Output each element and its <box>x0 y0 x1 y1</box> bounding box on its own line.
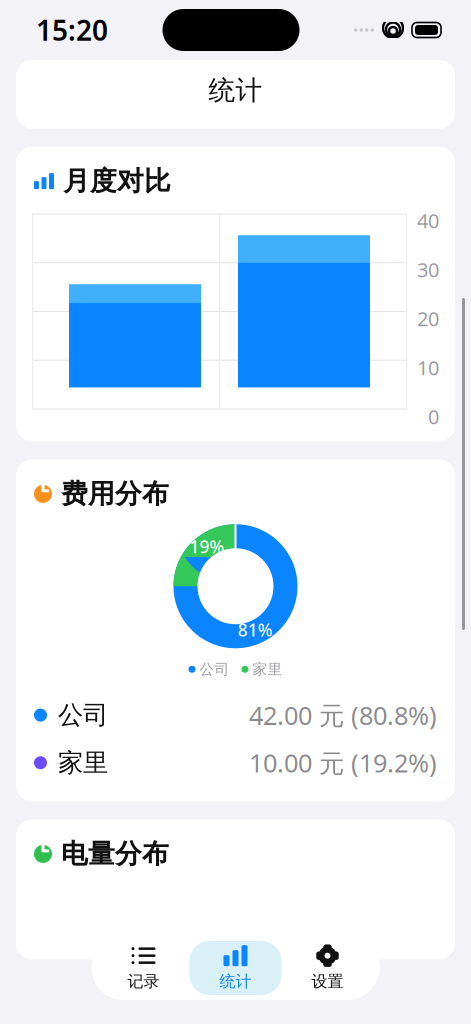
staticText: 10.00 元 (19.2%) <box>249 746 437 779</box>
staticText: 42.00 元 (80.8%) <box>249 698 437 732</box>
staticText: 10 <box>417 354 439 381</box>
staticText: 月度对比 <box>63 165 171 198</box>
staticText: 统计 <box>219 972 251 991</box>
staticText: 电量分布 <box>61 838 169 870</box>
staticText: 设置 <box>311 972 343 991</box>
button[interactable]: 家里 <box>34 742 437 783</box>
staticText: 40 <box>417 207 439 234</box>
button[interactable]: 设置 <box>281 941 373 995</box>
staticText: 公司 <box>58 699 108 731</box>
staticText: 0 <box>428 403 439 430</box>
staticText: 记录 <box>127 972 159 991</box>
button[interactable]: 统计 <box>189 941 281 995</box>
staticText: 15:20 <box>36 11 108 49</box>
staticText: 19% <box>189 535 224 558</box>
staticText: 费用分布 <box>61 477 169 510</box>
staticText: 30 <box>417 256 439 283</box>
staticText: 20 <box>417 305 439 332</box>
button[interactable]: 记录 <box>97 941 189 995</box>
staticText: 81% <box>238 618 273 641</box>
staticText: 家里 <box>252 660 282 678</box>
staticText: 统计 <box>208 74 262 107</box>
staticText: 家里 <box>58 747 108 778</box>
button[interactable]: 公司 <box>34 694 437 736</box>
staticText: 公司 <box>199 660 229 678</box>
